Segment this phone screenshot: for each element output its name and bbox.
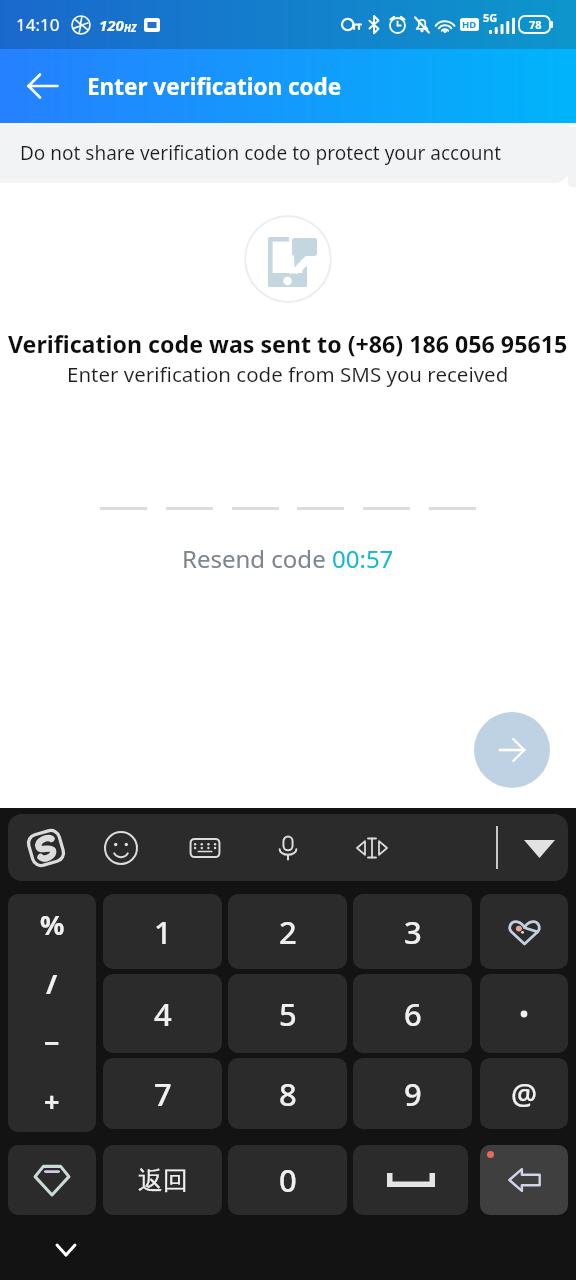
staticText: − <box>44 1024 60 1061</box>
button[interactable]: Hide keyboard <box>508 814 568 881</box>
button[interactable] <box>0 123 570 183</box>
staticText: 7 <box>154 1073 172 1115</box>
button[interactable]: Space <box>353 1145 468 1215</box>
button[interactable]: 7 <box>103 1058 222 1129</box>
button[interactable]: 8 <box>228 1058 347 1129</box>
staticText: 0 <box>279 1159 297 1201</box>
staticText: 120 <box>99 15 124 35</box>
staticText: 1 <box>154 911 172 953</box>
staticText: 5 <box>279 993 297 1035</box>
button[interactable]: Resend code <box>182 542 394 575</box>
button[interactable]: Symbols <box>8 894 96 1132</box>
button[interactable]: 1 <box>103 894 222 969</box>
staticText: 14:10 <box>16 13 60 36</box>
staticText: 9 <box>404 1073 422 1115</box>
button[interactable]: Move cursor <box>347 814 397 881</box>
staticText: + <box>44 1083 60 1120</box>
staticText: @ <box>511 1074 538 1113</box>
staticText: Verification code was sent to (+86) 186 … <box>8 328 568 360</box>
button[interactable]: 2 <box>228 894 347 969</box>
button[interactable]: 9 <box>353 1058 472 1129</box>
staticText: 00:57 <box>332 542 394 575</box>
button[interactable]: 6 <box>353 974 472 1053</box>
button[interactable]: Stickers <box>480 894 568 969</box>
button[interactable]: 5 <box>228 974 347 1053</box>
staticText: HD <box>462 18 477 31</box>
staticText: Resend code <box>182 542 332 575</box>
staticText: 4 <box>154 993 172 1035</box>
staticText: 78 <box>529 17 542 32</box>
button[interactable]: Collapse <box>44 1228 88 1272</box>
button[interactable]: Backspace <box>480 1145 568 1215</box>
staticText: 6 <box>404 993 422 1035</box>
button[interactable]: 3 <box>353 894 472 969</box>
button[interactable]: 返回 <box>103 1145 222 1215</box>
button[interactable]: More <box>8 1145 96 1215</box>
staticText: / <box>46 965 58 1002</box>
button[interactable]: Emoji <box>96 814 146 881</box>
button[interactable]: 0 <box>228 1145 347 1215</box>
staticText: % <box>40 906 65 943</box>
button[interactable]: Back <box>15 58 71 114</box>
staticText: Enter verification code from SMS you rec… <box>67 360 509 388</box>
staticText: 8 <box>279 1073 297 1115</box>
button[interactable]: @ <box>480 1058 568 1129</box>
staticText: 3 <box>404 911 422 953</box>
staticText: Do not share verification code to protec… <box>20 140 502 166</box>
button[interactable]: Sogou input <box>8 814 84 881</box>
button[interactable] <box>480 974 568 1053</box>
button[interactable]: Keyboard layout <box>180 814 230 881</box>
button[interactable]: Voice input <box>263 814 313 881</box>
button[interactable]: 4 <box>103 974 222 1053</box>
staticText: 2 <box>279 911 297 953</box>
staticText: 5G <box>483 10 498 25</box>
staticText: 返回 <box>138 1165 188 1196</box>
staticText: Enter verification code <box>87 71 342 102</box>
button[interactable]: Continue <box>474 712 550 788</box>
staticText: HZ <box>124 21 137 35</box>
